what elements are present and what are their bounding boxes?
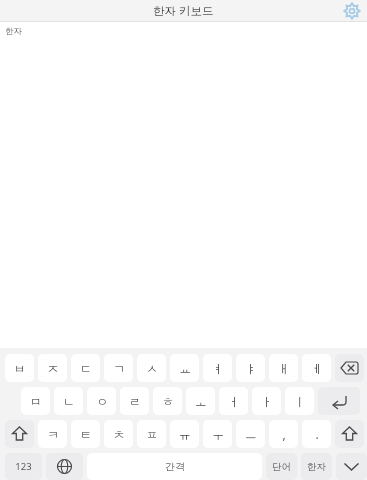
button[interactable]: ㅍ xyxy=(137,420,166,448)
staticText: ㅠ xyxy=(179,427,191,442)
staticText: 한자 키보드 xyxy=(153,3,214,19)
staticText: ㅔ xyxy=(311,361,323,376)
staticText: 한자 xyxy=(307,461,326,473)
button[interactable]: ㅕ xyxy=(203,354,232,382)
staticText: . xyxy=(315,426,319,442)
button[interactable]: 단어 xyxy=(266,453,297,480)
button[interactable]: ㅋ xyxy=(38,420,67,448)
button[interactable]: ㅐ xyxy=(269,354,298,382)
staticText: ㅡ xyxy=(245,427,257,442)
button[interactable]: ㅇ xyxy=(87,387,116,415)
staticText: ㅏ xyxy=(261,394,273,409)
button[interactable]: 간격 xyxy=(87,453,262,480)
button[interactable]: ㅓ xyxy=(219,387,248,415)
staticText: ㅈ xyxy=(47,361,59,376)
button[interactable]: ㅏ xyxy=(252,387,281,415)
staticText: ㄹ xyxy=(129,394,141,409)
staticText: ㄷ xyxy=(80,361,92,376)
button[interactable]: ㅜ xyxy=(203,420,232,448)
button[interactable]: 123 xyxy=(5,453,42,480)
staticText: 한자 xyxy=(5,26,22,37)
staticText: ㅛ xyxy=(179,361,191,376)
button[interactable]: Backspace xyxy=(335,354,364,382)
staticText: ㄱ xyxy=(113,361,125,376)
staticText: ㅗ xyxy=(195,394,207,409)
staticText: 123 xyxy=(15,460,32,473)
button[interactable]: , xyxy=(269,420,298,448)
button[interactable]: ㄹ xyxy=(120,387,149,415)
button[interactable]: Enter xyxy=(318,387,360,415)
staticText: ㅜ xyxy=(212,427,224,442)
staticText: 간격 xyxy=(165,460,185,473)
staticText: 단어 xyxy=(272,461,291,473)
button[interactable]: ㅌ xyxy=(71,420,100,448)
button[interactable]: ㅣ xyxy=(285,387,314,415)
staticText: ㅅ xyxy=(146,361,158,376)
staticText: ㄴ xyxy=(63,394,75,409)
button[interactable]: Change language xyxy=(46,453,83,480)
staticText: ㅓ xyxy=(228,394,240,409)
button[interactable]: ㅑ xyxy=(236,354,265,382)
button[interactable]: ㅠ xyxy=(170,420,199,448)
staticText: , xyxy=(282,426,286,442)
button[interactable]: ㅁ xyxy=(21,387,50,415)
staticText: ㅣ xyxy=(294,394,306,409)
button[interactable]: Settings xyxy=(342,1,362,21)
staticText: ㅁ xyxy=(30,394,42,409)
button[interactable]: ㄷ xyxy=(71,354,100,382)
staticText: ㅕ xyxy=(212,361,224,376)
staticText: ㅎ xyxy=(162,394,174,409)
staticText: ㅐ xyxy=(278,361,290,376)
button[interactable]: ㅂ xyxy=(5,354,34,382)
button[interactable]: ㅗ xyxy=(186,387,215,415)
button[interactable]: Hide keyboard xyxy=(336,453,367,480)
button[interactable]: ㅊ xyxy=(104,420,133,448)
staticText: ㅋ xyxy=(47,427,59,442)
button[interactable]: Shift xyxy=(5,420,34,448)
staticText: ㅑ xyxy=(245,361,257,376)
staticText: ㅇ xyxy=(96,394,108,409)
button[interactable]: ㄴ xyxy=(54,387,83,415)
staticText: ㅊ xyxy=(113,427,125,442)
button[interactable]: . xyxy=(302,420,331,448)
button[interactable]: 한자 xyxy=(301,453,332,480)
button[interactable]: ㅅ xyxy=(137,354,166,382)
staticText: ㅍ xyxy=(146,427,158,442)
button[interactable]: ㅈ xyxy=(38,354,67,382)
staticText: ㅂ xyxy=(14,361,26,376)
button[interactable]: ㄱ xyxy=(104,354,133,382)
button[interactable]: ㅎ xyxy=(153,387,182,415)
button[interactable]: ㅛ xyxy=(170,354,199,382)
staticText: ㅌ xyxy=(80,427,92,442)
button[interactable]: Shift xyxy=(335,420,364,448)
button[interactable]: ㅡ xyxy=(236,420,265,448)
button[interactable]: ㅔ xyxy=(302,354,331,382)
